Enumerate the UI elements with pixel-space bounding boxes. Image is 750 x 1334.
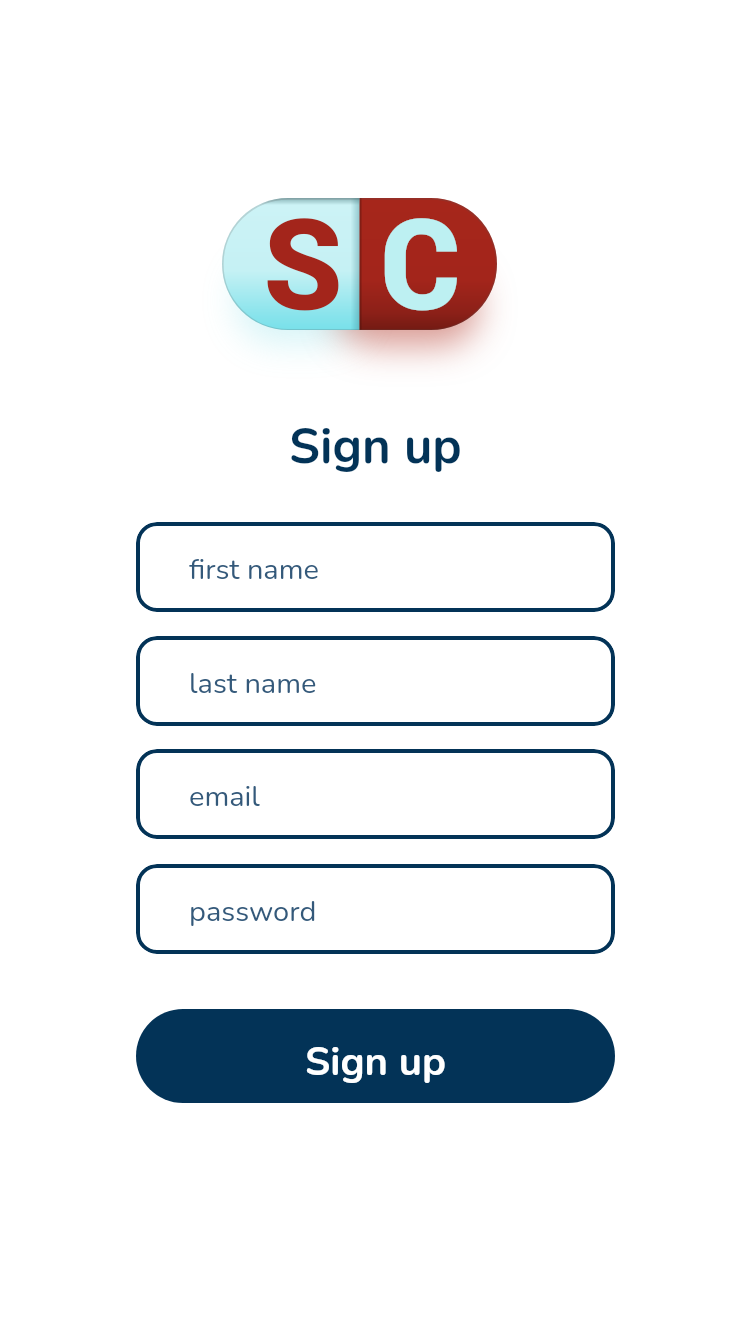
button[interactable]: first name	[136, 522, 615, 612]
staticText: password	[189, 892, 317, 932]
staticText: Sign up	[305, 1035, 446, 1090]
staticText: email	[189, 777, 260, 817]
button[interactable]: email	[136, 749, 615, 839]
button[interactable]: last name	[136, 636, 615, 726]
staticText: last name	[189, 664, 317, 704]
button[interactable]: Sign up	[136, 1009, 615, 1103]
staticText: Sign up	[289, 413, 462, 480]
other: SC logo	[214, 190, 505, 354]
staticText: first name	[189, 550, 319, 590]
button[interactable]: password	[136, 864, 615, 954]
